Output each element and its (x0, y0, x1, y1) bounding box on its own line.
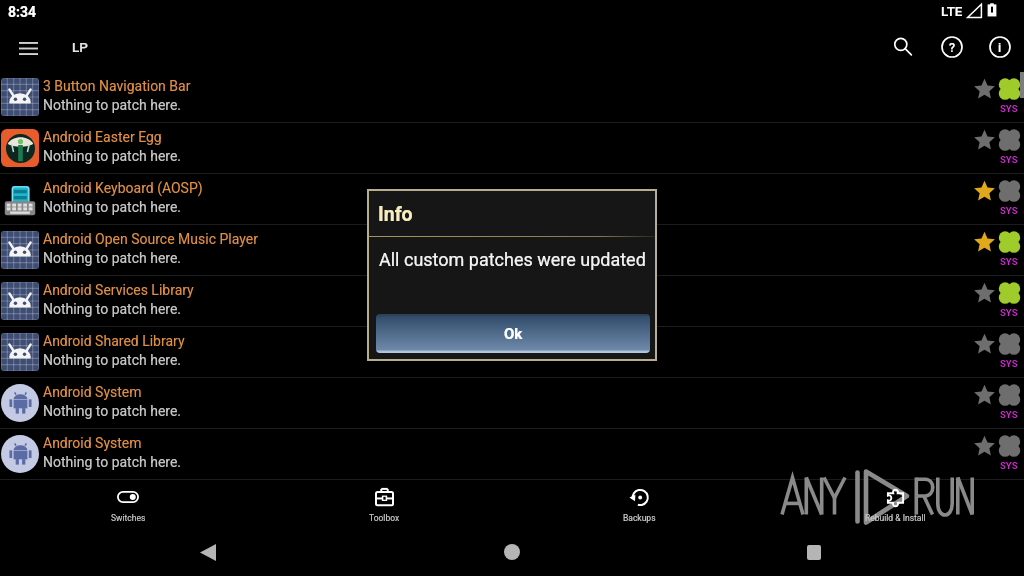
staticText: Android Open Source Music Player (43, 231, 258, 247)
staticText: Rebuild & Install (865, 513, 926, 523)
button[interactable]: Rebuild & Install (831, 480, 959, 528)
button[interactable]: Ok (376, 314, 650, 353)
staticText: Android Services Library (43, 282, 194, 298)
button[interactable]: Help (933, 28, 971, 66)
button[interactable]: Back (178, 528, 238, 576)
staticText: Nothing to patch here. (43, 250, 182, 266)
button[interactable]: Toolbox (320, 480, 448, 528)
staticText: SYS (1000, 460, 1018, 471)
staticText: Android Shared Library (43, 333, 185, 349)
staticText: Toolbox (369, 513, 400, 523)
button[interactable]: About (981, 28, 1019, 66)
staticText: Android Keyboard (AOSP) (43, 180, 203, 196)
button[interactable]: Switches (64, 480, 192, 528)
staticText: SYS (1000, 103, 1018, 114)
staticText: ? (949, 40, 956, 55)
staticText: Ok (504, 325, 523, 343)
staticText: Switches (111, 513, 146, 523)
button[interactable]: Android System (0, 378, 1024, 429)
staticText: 8:34 (8, 4, 37, 20)
staticText: Info (378, 203, 413, 226)
staticText: SYS (1000, 307, 1018, 318)
staticText: SYS (1000, 154, 1018, 165)
staticText: Android Easter Egg (43, 129, 162, 145)
staticText: SYS (1000, 205, 1018, 216)
staticText: Nothing to patch here. (43, 97, 182, 113)
button[interactable]: Android Shared Library (0, 327, 1024, 378)
button[interactable]: Android Open Source Music Player (0, 225, 1024, 276)
staticText: SYS (1000, 358, 1018, 369)
staticText: LP (72, 39, 88, 55)
staticText: Nothing to patch here. (43, 199, 182, 215)
staticText: SYS (1000, 256, 1018, 267)
button[interactable]: Android System (0, 429, 1024, 480)
button[interactable]: Android Services Library (0, 276, 1024, 327)
staticText: Backups (623, 513, 656, 523)
staticText: i (998, 40, 1002, 55)
staticText: Android System (43, 384, 142, 400)
staticText: LTE (941, 3, 963, 19)
button[interactable]: Android Easter Egg (0, 123, 1024, 174)
staticText: Nothing to patch here. (43, 454, 182, 470)
staticText: Nothing to patch here. (43, 403, 182, 419)
staticText: Nothing to patch here. (43, 301, 182, 317)
staticText: Nothing to patch here. (43, 352, 182, 368)
button[interactable]: Backups (575, 480, 703, 528)
button[interactable]: Home (482, 528, 542, 576)
staticText: Android System (43, 435, 142, 451)
staticText: Nothing to patch here. (43, 148, 182, 164)
staticText: SYS (1000, 409, 1018, 420)
button[interactable]: Android Keyboard (AOSP) (0, 174, 1024, 225)
button[interactable]: Navigation menu (8, 28, 48, 68)
staticText: 3 Button Navigation Bar (43, 78, 191, 94)
button[interactable]: Search (884, 28, 922, 66)
button[interactable]: 3 Button Navigation Bar (0, 72, 1024, 123)
staticText: All custom patches were updated (379, 249, 646, 270)
button[interactable]: Recent apps (784, 528, 844, 576)
